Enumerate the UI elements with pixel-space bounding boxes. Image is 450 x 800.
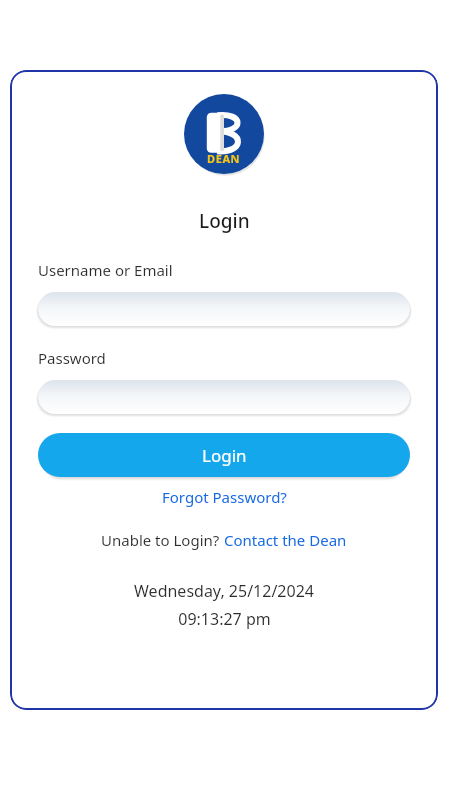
staticText: Unable to Login?: [101, 530, 224, 550]
staticText: Username or Email: [38, 260, 173, 280]
button[interactable]: Forgot Password?: [156, 485, 293, 509]
other: Dean app logo: [184, 94, 264, 174]
staticText: Login: [199, 208, 250, 234]
button[interactable]: Contact the Dean: [224, 530, 347, 550]
staticText: 09:13:27 pm: [178, 608, 271, 630]
staticText: Wednesday, 25/12/2024: [134, 580, 314, 602]
button[interactable]: Login: [38, 433, 410, 477]
staticText: DEAN: [207, 151, 241, 166]
staticText: Login: [202, 444, 247, 467]
button[interactable]: [38, 292, 410, 326]
staticText: Contact the Dean: [224, 530, 347, 550]
button[interactable]: [38, 380, 410, 414]
staticText: Forgot Password?: [162, 487, 287, 507]
staticText: Password: [38, 348, 106, 368]
